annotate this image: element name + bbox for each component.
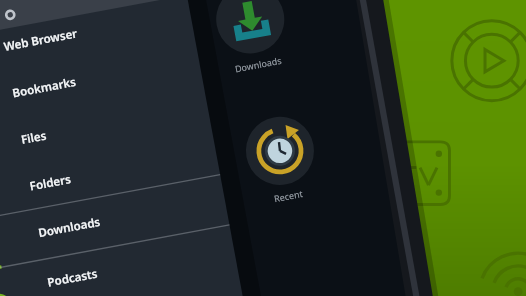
button[interactable]: Navigation drawer preview <box>0 0 526 296</box>
